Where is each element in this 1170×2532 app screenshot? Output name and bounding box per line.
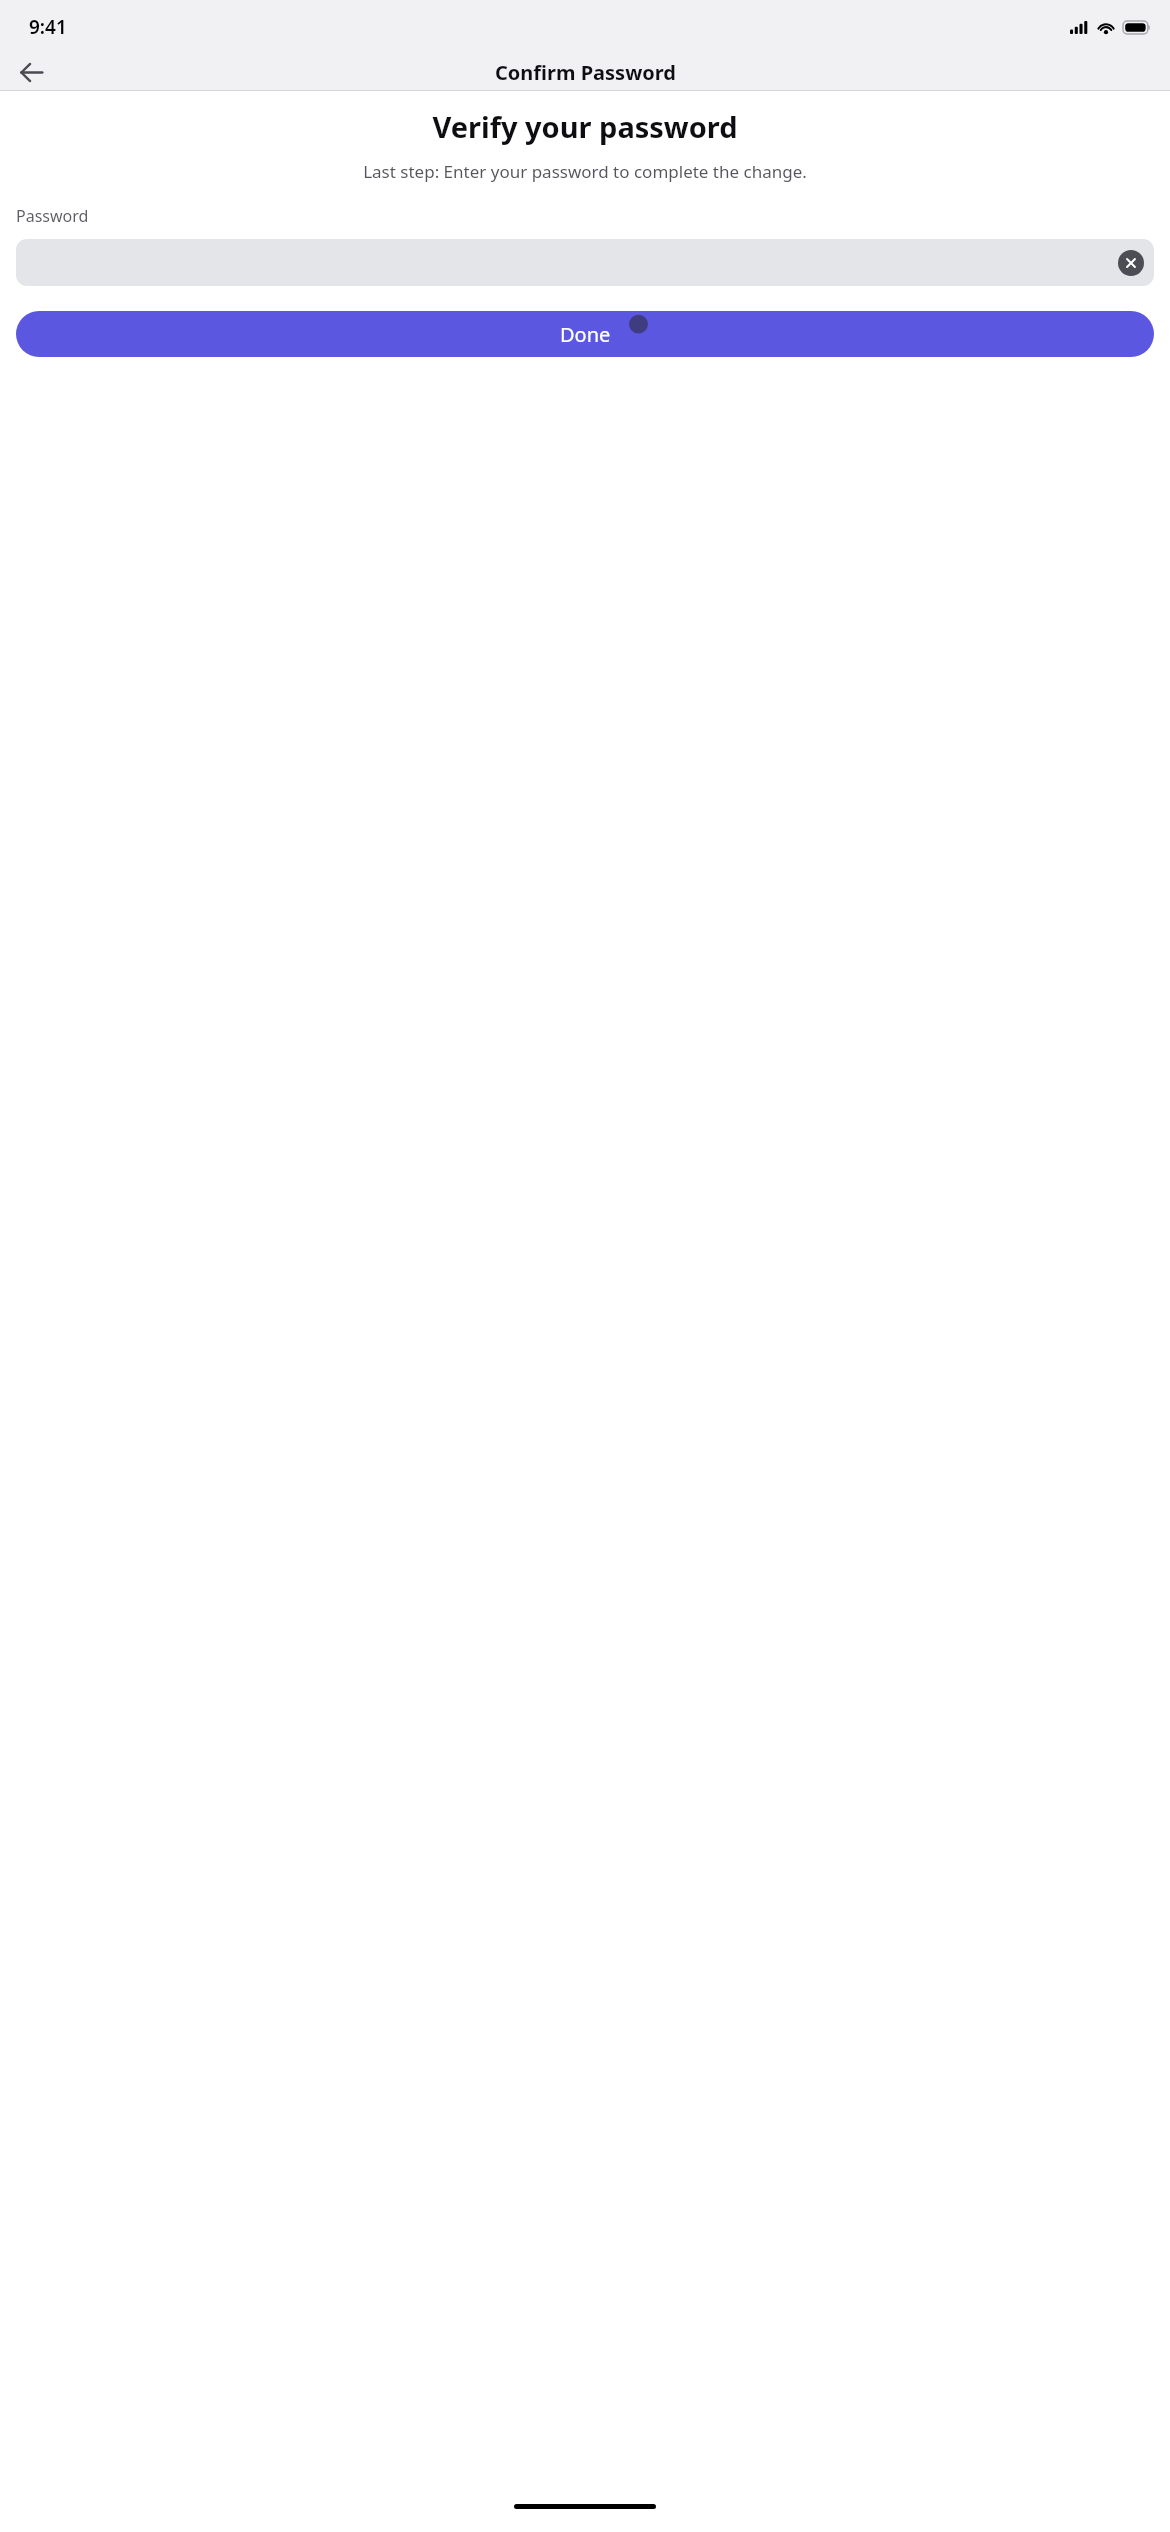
button[interactable]: Clear password [1118,250,1144,276]
staticText: Done [560,321,611,348]
staticText: 9:41 [29,14,67,40]
staticText: Verify your password [0,107,1170,146]
staticText: Password [16,205,89,227]
button[interactable]: Clear password [16,239,1154,286]
button[interactable]: Done [16,311,1154,357]
staticText: Last step: Enter your password to comple… [8,160,1162,183]
button[interactable]: Back [9,54,53,91]
staticText: Confirm Password [495,59,676,86]
